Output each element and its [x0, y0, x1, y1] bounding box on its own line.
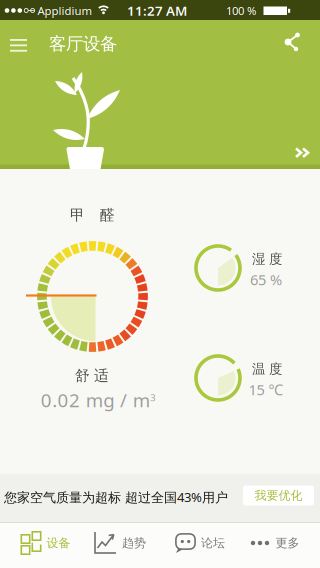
button[interactable]: 更多: [240, 520, 320, 565]
staticText: 15 ℃: [248, 380, 283, 399]
staticText: 您家空气质量为超标 超过全国43%用户: [4, 488, 228, 506]
staticText: 趋势: [122, 536, 146, 550]
staticText: Applidium: [37, 3, 92, 18]
button[interactable]: Share: [274, 27, 310, 56]
staticText: 11:27 AM: [127, 2, 187, 19]
staticText: 舒 适: [75, 366, 109, 384]
button[interactable]: 论坛: [160, 520, 240, 565]
staticText: 湿 度: [252, 251, 282, 267]
button[interactable]: Menu: [7, 24, 31, 60]
staticText: 65 %: [250, 270, 282, 289]
staticText: 我要优化: [254, 488, 302, 503]
staticText: 甲 醛: [70, 206, 115, 224]
staticText: 温 度: [252, 361, 282, 377]
button[interactable]: Details: [293, 147, 311, 158]
button[interactable]: 趋势: [80, 520, 160, 565]
button[interactable]: 设备: [0, 520, 80, 565]
staticText: 100 %: [226, 3, 256, 18]
staticText: 论坛: [201, 536, 225, 550]
staticText: 更多: [275, 536, 299, 550]
staticText: 设备: [46, 536, 70, 550]
button[interactable]: 我要优化: [243, 485, 314, 505]
staticText: 0.02 mg / m3: [41, 388, 155, 412]
staticText: 客厅设备: [49, 33, 117, 55]
